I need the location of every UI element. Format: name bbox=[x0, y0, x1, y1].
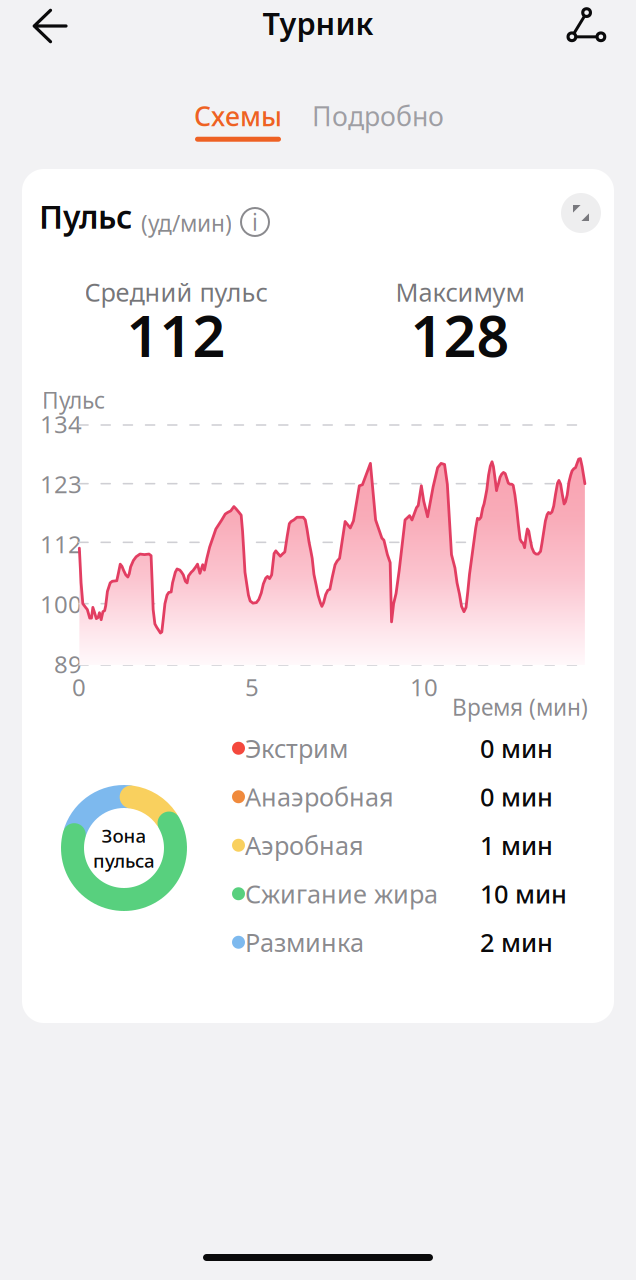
button[interactable]: Схемы bbox=[178, 94, 298, 146]
staticText: 0 мин bbox=[480, 731, 553, 765]
staticText: Разминка bbox=[245, 925, 364, 959]
staticText: 112 bbox=[40, 528, 82, 560]
button[interactable]: Развернуть график bbox=[561, 193, 601, 233]
staticText: 123 bbox=[40, 468, 82, 500]
staticText: (уд/мин) bbox=[141, 208, 232, 238]
staticText: Аэробная bbox=[245, 828, 364, 862]
button[interactable]: Анаэробная bbox=[232, 772, 608, 821]
staticText: 134 bbox=[40, 408, 82, 440]
button[interactable]: Подробно bbox=[298, 94, 458, 146]
button[interactable]: Аэробная bbox=[232, 821, 608, 869]
staticText: Время (мин) bbox=[452, 692, 588, 722]
staticText: 112 bbox=[126, 297, 225, 373]
staticText: 0 мин bbox=[480, 780, 553, 813]
staticText: Сжигание жира bbox=[245, 877, 438, 910]
staticText: Подробно bbox=[312, 98, 444, 134]
staticText: Экстрим bbox=[245, 731, 348, 765]
staticText: 10 мин bbox=[480, 877, 567, 910]
staticText: 5 bbox=[245, 671, 259, 703]
staticText: пульса bbox=[93, 848, 155, 873]
button[interactable]: Поделиться bbox=[552, 0, 620, 52]
staticText: i bbox=[252, 207, 258, 237]
button[interactable]: Экстрим bbox=[232, 724, 608, 772]
button[interactable]: Разминка bbox=[232, 918, 608, 966]
staticText: 100 bbox=[40, 588, 82, 620]
staticText: 128 bbox=[410, 297, 509, 373]
staticText: 89 bbox=[54, 648, 82, 680]
staticText: 0 bbox=[72, 671, 86, 703]
button[interactable]: Информация bbox=[240, 207, 270, 237]
staticText: Максимум bbox=[395, 275, 524, 309]
staticText: Турник bbox=[262, 3, 373, 43]
button[interactable]: Сжигание жира bbox=[232, 869, 608, 918]
staticText: Средний пульс bbox=[84, 275, 267, 309]
staticText: Анаэробная bbox=[245, 780, 394, 813]
staticText: Пульс bbox=[42, 385, 105, 415]
staticText: 1 мин bbox=[480, 828, 553, 862]
staticText: Зона bbox=[101, 823, 146, 848]
staticText: 10 bbox=[410, 671, 438, 703]
staticText: Пульс bbox=[39, 195, 132, 237]
staticText: Схемы bbox=[194, 98, 282, 134]
button[interactable]: Назад bbox=[16, 0, 84, 52]
staticText: 2 мин bbox=[480, 925, 553, 959]
